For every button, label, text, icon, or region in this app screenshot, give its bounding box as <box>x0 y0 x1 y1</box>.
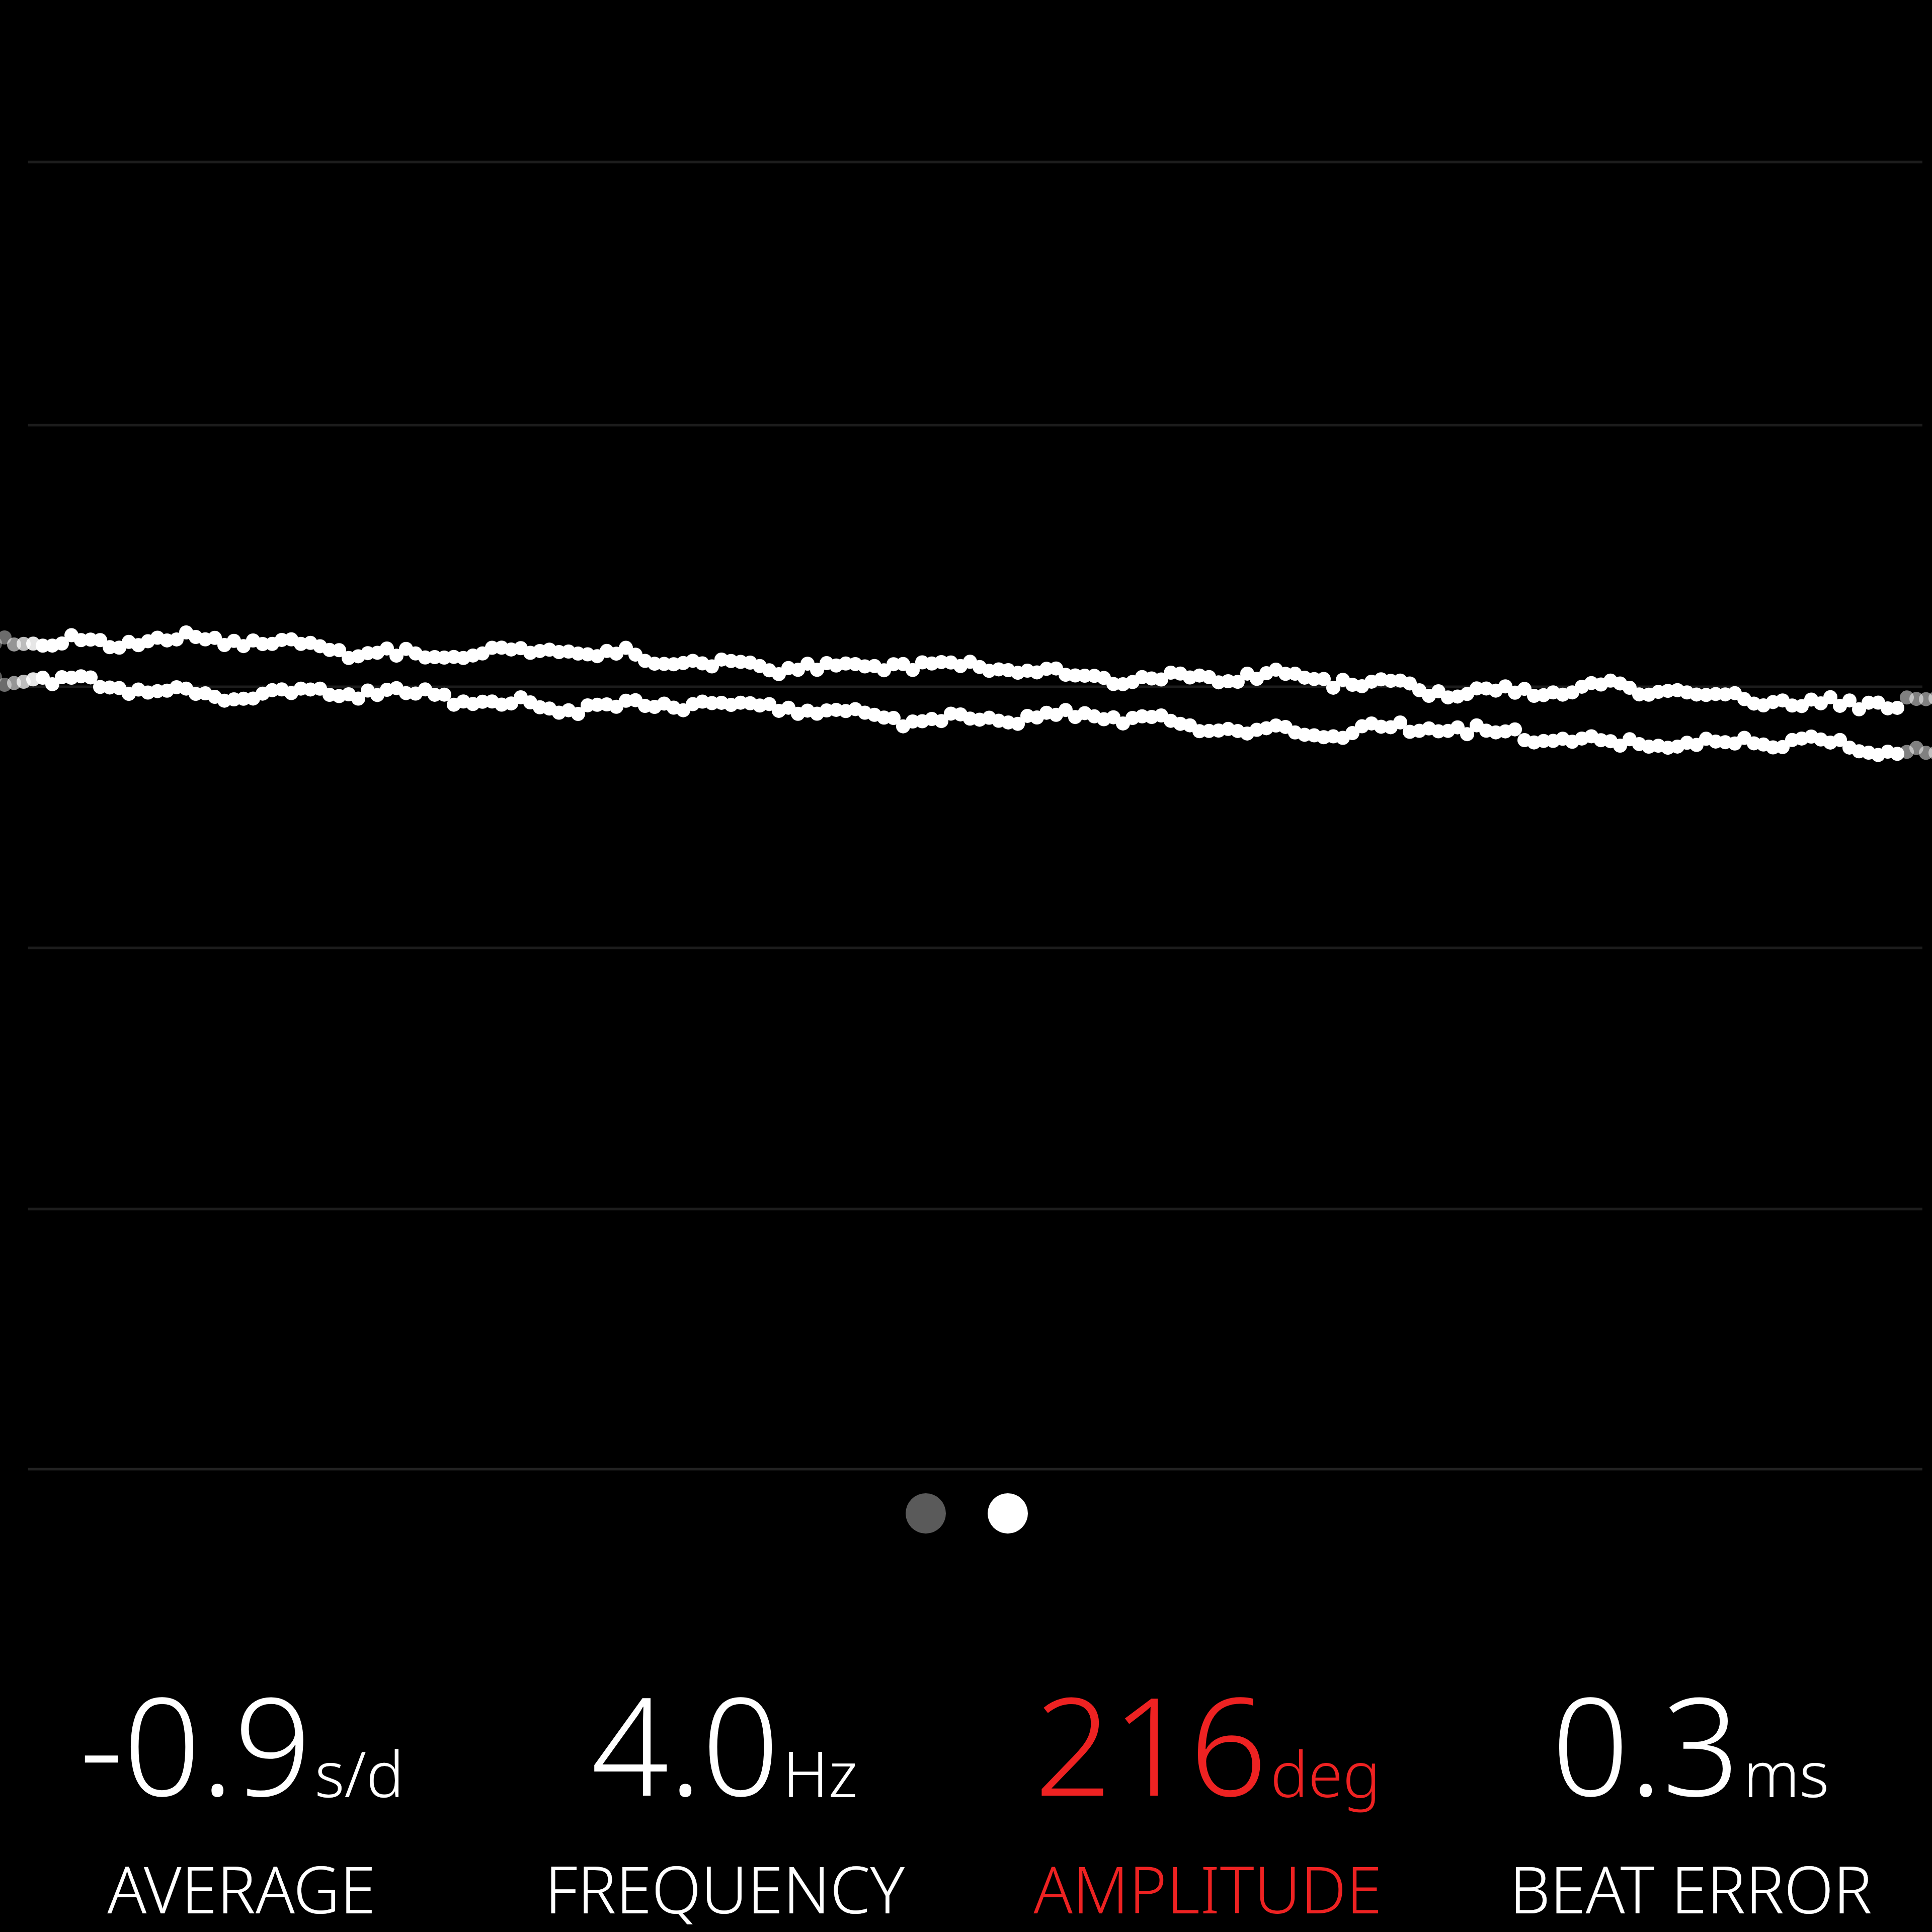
button[interactable]: -0.9 <box>0 1650 483 1932</box>
staticText: Hz <box>783 1730 858 1815</box>
staticText: s/d <box>315 1730 404 1815</box>
staticText: 4.0 <box>591 1650 780 1835</box>
staticText: 216 <box>1034 1650 1267 1835</box>
staticText: deg <box>1270 1730 1381 1815</box>
staticText: ms <box>1743 1730 1829 1815</box>
button[interactable]: Page 1 <box>906 1493 946 1534</box>
button[interactable]: Page 2 <box>988 1493 1028 1534</box>
button[interactable]: 4.0 <box>483 1650 966 1932</box>
staticText: BEAT ERROR <box>1509 1844 1872 1932</box>
staticText: FREQUENCY <box>545 1844 905 1932</box>
staticText: AVERAGE <box>107 1844 376 1932</box>
button[interactable]: 216 <box>966 1650 1449 1932</box>
button[interactable]: Timing trace graph <box>0 0 1932 1489</box>
button[interactable]: 0.3 <box>1449 1650 1932 1932</box>
staticText: -0.9 <box>79 1650 312 1835</box>
staticText: AMPLITUDE <box>1033 1844 1382 1932</box>
staticText: 0.3 <box>1552 1650 1740 1835</box>
